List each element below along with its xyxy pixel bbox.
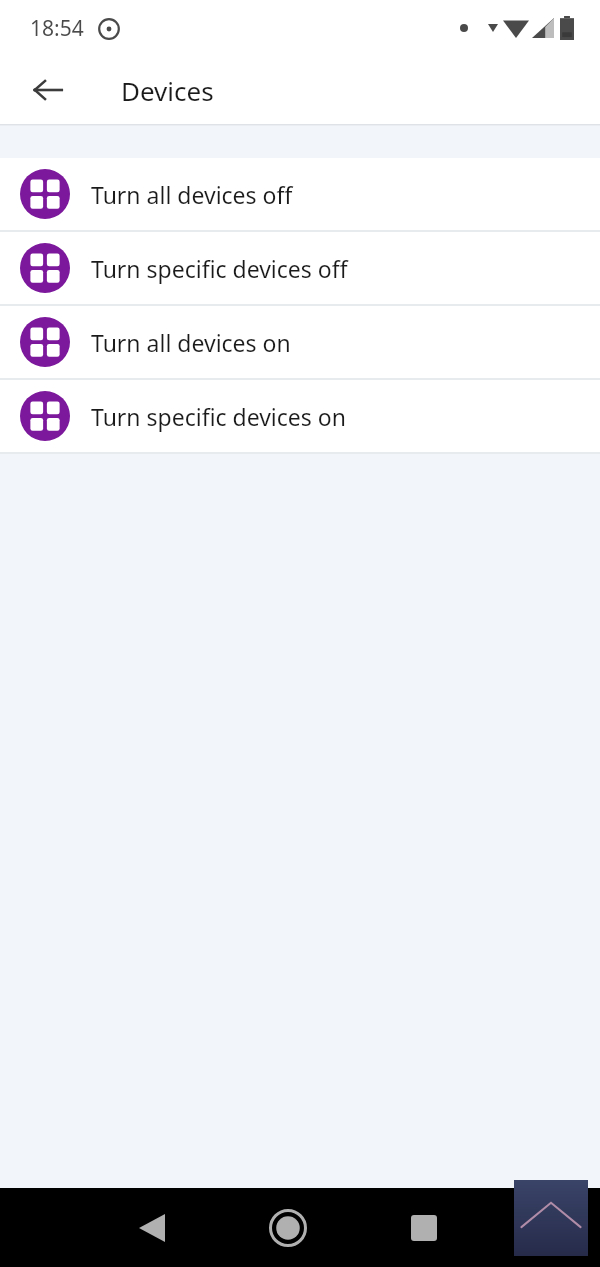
button[interactable]: Turn all devices on: [0, 306, 600, 378]
staticText: Turn all devices off: [91, 179, 293, 210]
staticText: Turn all devices on: [91, 327, 291, 358]
button[interactable]: Recent apps: [392, 1196, 456, 1260]
staticText: 18:54: [30, 14, 84, 43]
button[interactable]: Turn all devices off: [0, 158, 600, 230]
staticText: Devices: [121, 73, 214, 108]
staticText: Turn specific devices on: [91, 401, 346, 432]
button[interactable]: Turn specific devices on: [0, 380, 600, 452]
button[interactable]: Expand overlay: [514, 1180, 588, 1256]
staticText: Turn specific devices off: [91, 253, 348, 284]
button[interactable]: Back: [20, 62, 76, 118]
button[interactable]: Turn specific devices off: [0, 232, 600, 304]
button[interactable]: Home: [256, 1196, 320, 1260]
button[interactable]: Back: [120, 1196, 184, 1260]
